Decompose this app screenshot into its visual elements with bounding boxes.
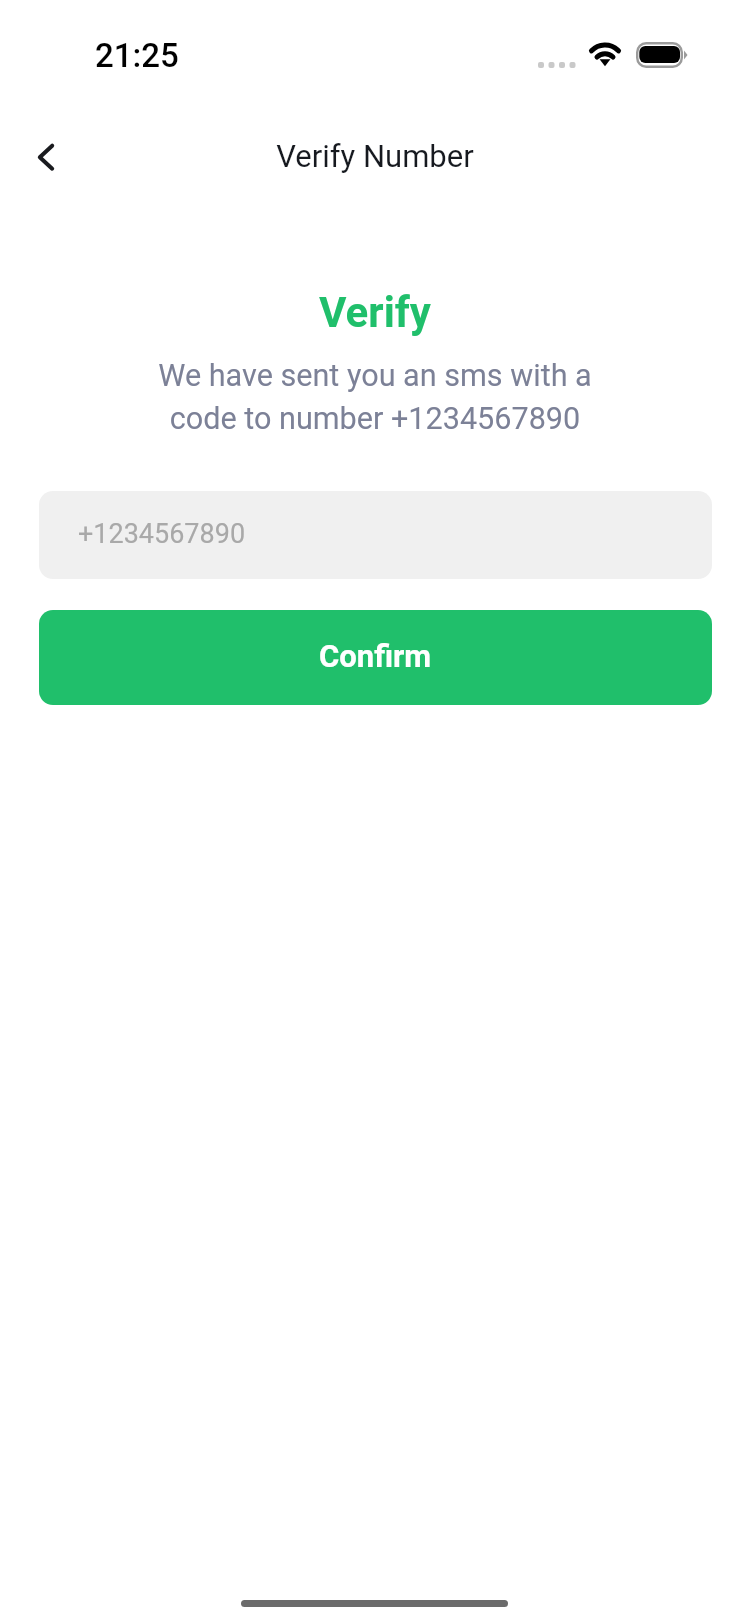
button[interactable]: Confirm	[39, 610, 712, 705]
staticText: We have sent you an sms with a code to n…	[0, 352, 750, 438]
staticText: Verify Number	[0, 138, 750, 174]
staticText: Confirm	[319, 638, 432, 674]
button[interactable]: Back	[14, 133, 64, 183]
button[interactable]: +1234567890	[39, 491, 712, 579]
staticText: Verify	[0, 288, 750, 337]
staticText: 21:25	[95, 35, 179, 75]
staticText: +1234567890	[78, 518, 246, 550]
